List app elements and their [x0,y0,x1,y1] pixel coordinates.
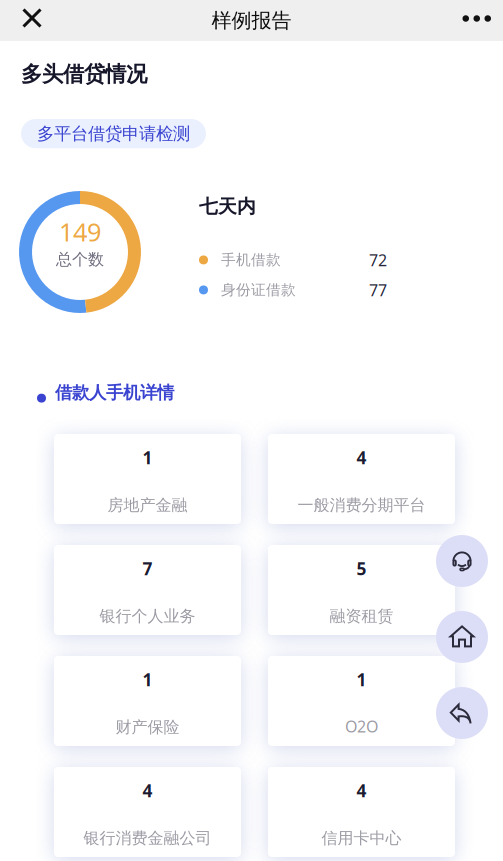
button[interactable]: 4 [268,767,455,857]
staticText: 4 [142,779,152,802]
button[interactable]: 5 [268,545,455,635]
staticText: 手机借款 [221,251,281,269]
staticText: 多平台借贷申请检测 [37,123,190,144]
staticText: 信用卡中心 [321,828,401,848]
staticText: 身份证借款 [221,281,296,299]
button[interactable]: 关闭 [0,0,58,41]
staticText: 5 [356,557,366,580]
staticText: 财产保险 [115,717,179,737]
staticText: 4 [356,779,366,802]
button[interactable]: 多平台借贷申请检测 [21,119,206,148]
staticText: 4 [356,446,366,469]
button[interactable]: 1 [268,656,455,746]
button[interactable]: 更多 [446,1,503,40]
staticText: 149 [59,215,101,248]
button[interactable]: 4 [54,767,241,857]
button[interactable]: 返回 [436,687,488,739]
staticText: 1 [356,668,366,691]
staticText: 借款人手机详情 [55,382,174,403]
button[interactable]: 首页 [436,611,488,663]
staticText: 7 [142,557,152,580]
staticText: 1 [142,446,152,469]
staticText: 77 [369,279,387,300]
button[interactable]: 客服 [436,535,488,587]
staticText: 72 [369,249,387,270]
button[interactable]: 4 [268,434,455,524]
staticText: 样例报告 [211,8,291,33]
staticText: 总个数 [56,249,104,269]
button[interactable]: 1 [54,434,241,524]
staticText: 融资租赁 [329,606,393,626]
staticText: 一般消费分期平台 [297,495,425,515]
button[interactable]: 1 [54,656,241,746]
staticText: 七天内 [199,195,256,218]
staticText: 多头借贷情况 [21,61,147,87]
staticText: 房地产金融 [107,495,187,515]
staticText: O2O [345,716,378,737]
staticText: 银行消费金融公司 [83,828,211,848]
button[interactable]: 7 [54,545,241,635]
staticText: 银行个人业务 [99,606,195,626]
staticText: 1 [142,668,152,691]
